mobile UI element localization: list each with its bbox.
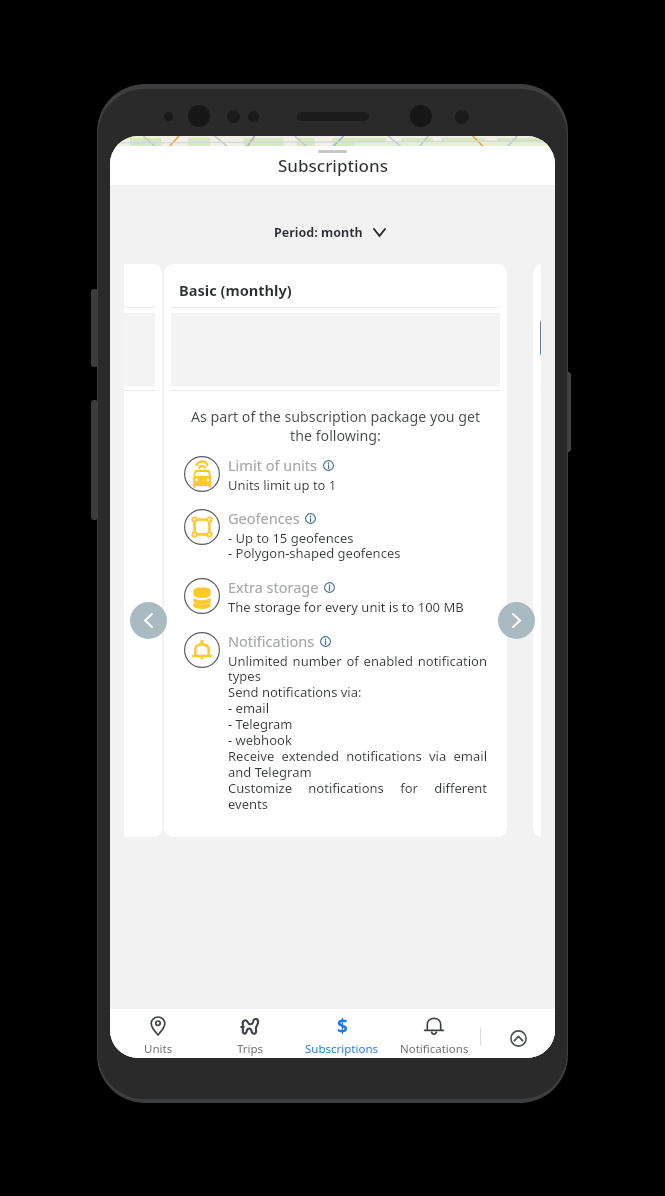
button[interactable]: Trips — [204, 1009, 296, 1058]
staticText: Units — [144, 1041, 173, 1057]
staticText: Geofences — [228, 508, 300, 528]
staticText: As part of the subscription package you … — [186, 407, 485, 445]
staticText: - Up to 15 geofences - Polygon-shaped ge… — [228, 529, 487, 562]
staticText: $ — [337, 1013, 348, 1039]
staticText: Trips — [237, 1041, 264, 1057]
staticText: Units limit up to 1 — [228, 476, 487, 494]
staticText: Basic (monthly) — [179, 280, 292, 300]
button[interactable]: Units — [112, 1009, 204, 1058]
staticText: Extra storage — [228, 577, 319, 597]
button[interactable]: Expand panel — [494, 1009, 542, 1058]
staticText: The storage for every unit is to 100 MB — [228, 598, 487, 616]
button[interactable]: Period: month — [110, 222, 552, 242]
button[interactable]: Previous plan — [130, 602, 167, 639]
staticText: Notifications — [400, 1041, 469, 1057]
button[interactable]: $ — [296, 1009, 388, 1058]
staticText: Subscriptions — [305, 1041, 379, 1057]
staticText: Subscriptions — [278, 154, 388, 177]
button[interactable]: Notifications — [388, 1009, 480, 1058]
staticText: Period: month — [274, 224, 363, 241]
staticText: Limit of units — [228, 455, 318, 475]
staticText: Unlimited number of enabled notification… — [228, 652, 487, 813]
button[interactable]: Next plan — [498, 602, 535, 639]
staticText: Notifications — [228, 631, 315, 651]
